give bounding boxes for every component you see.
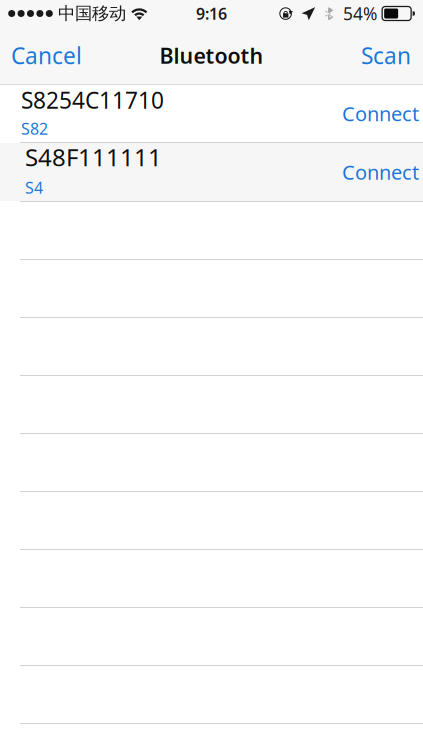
staticText: S4 xyxy=(25,177,43,198)
staticText: 54% xyxy=(343,2,377,25)
staticText: Connect xyxy=(342,159,419,185)
staticText: 9:16 xyxy=(196,3,227,24)
staticText: Connect xyxy=(342,100,419,127)
button[interactable]: S48F111111 xyxy=(0,143,423,201)
staticText: S8254C11710 xyxy=(21,85,164,115)
button[interactable]: Scan xyxy=(347,27,423,84)
staticText: Bluetooth xyxy=(159,41,263,70)
staticText: S48F111111 xyxy=(25,141,162,173)
staticText: Scan xyxy=(361,40,411,70)
staticText: S82 xyxy=(21,118,48,139)
button[interactable]: S8254C11710 xyxy=(0,85,423,142)
button[interactable]: Cancel xyxy=(0,27,96,84)
staticText: 中国移动 xyxy=(58,3,126,24)
staticText: Cancel xyxy=(11,40,82,70)
